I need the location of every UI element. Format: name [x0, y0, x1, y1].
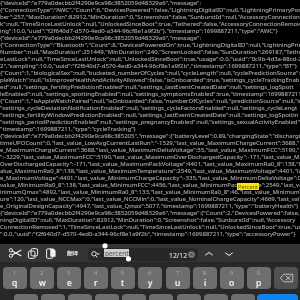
button[interactable]: Copy: [24, 244, 41, 262]
staticText: ure":120,"last_value_NCCMax":0,"last_val…: [0, 195, 300, 202]
button[interactable]: Next match: [220, 244, 238, 264]
button[interactable]: Enter: [257, 294, 298, 300]
button[interactable]: Paste: [42, 244, 59, 262]
staticText: {"deviceId":"e779a0decbb2f4290e9ca98c385…: [0, 209, 300, 216]
staticText: Percent: [238, 183, 259, 190]
staticText: 9: [230, 269, 234, 276]
staticText: alue_MaximumRa0_8":138,"last_value_Maxim…: [0, 167, 300, 174]
staticText: o: [229, 277, 235, 289]
staticText: ConnectionRemoved":1,"TimeSinceLastLock"…: [0, 223, 300, 230]
staticText: 2","sampling":10.0,"uuid":"f2f640d7-d570…: [0, 62, 300, 69]
staticText: r: [94, 277, 98, 289]
staticText: 3: [67, 269, 71, 276]
staticText: i: [204, 277, 207, 289]
staticText: timeUPOCount":0,"last_value_LowAvgCurren…: [0, 139, 300, 146]
staticText: 12/12: [169, 251, 188, 260]
button[interactable]: 5: [111, 267, 135, 289]
staticText: ":0.0,"uuid":"f2f640d7-d570-4ed0-a344-96…: [0, 230, 300, 237]
staticText: k":null,"TimeSinceLastUnlock":null,"Unlo…: [0, 20, 300, 27]
staticText: "settings_cycleDeviationNotificationEnab…: [0, 104, 300, 111]
staticText: {"deviceId":"e779a0decbb2f4290e9ca98c385…: [0, 34, 300, 41]
button[interactable]: a: [14, 294, 38, 300]
staticText: 6: [148, 269, 152, 276]
staticText: q: [12, 277, 18, 289]
staticText: w: [39, 277, 46, 289]
button[interactable]: 9: [220, 267, 244, 289]
staticText: "timestamp":1699887211,"type":"cycleTrac…: [0, 125, 300, 132]
button[interactable]: 6: [138, 267, 162, 289]
button[interactable]: d: [68, 294, 92, 300]
staticText: {"deviceId":"e779a0decbb2f4290e9ca98c385…: [0, 0, 300, 6]
staticText: ber":257,"MaxDuration":82912,"MinDuratio…: [0, 13, 300, 20]
staticText: 0: [257, 269, 261, 276]
staticText: u: [175, 277, 181, 289]
staticText: percent: [105, 249, 129, 257]
button[interactable]: Previous match: [200, 244, 218, 264]
staticText: Number":null,"MaxDuration":251449,"MinDu…: [0, 48, 300, 55]
button[interactable]: percent: [88, 248, 198, 261]
staticText: y: [148, 277, 153, 289]
button[interactable]: 4: [84, 267, 108, 289]
button[interactable]: 2: [30, 267, 54, 289]
staticText: 8: [203, 269, 207, 276]
button[interactable]: k: [204, 294, 228, 300]
staticText: ningDigitalID":null,"MaxDuration":82912,…: [0, 216, 300, 223]
staticText: pleWatch":null,"isImproveHealthAndActivi…: [0, 76, 300, 83]
staticText: ing":10.0,"uuid":"f2f640d7-d570-4ed0-a34…: [0, 27, 300, 34]
staticText: "settings_fertilityWindowPredictionEnabl…: [0, 111, 300, 118]
staticText: 7: [176, 269, 180, 276]
staticText: ":-3229,"last_value_MaximumFCC":5190,"la…: [0, 153, 300, 160]
staticText: {"Count":1,"biologicalSex":null,"buckete…: [0, 69, 300, 76]
button[interactable]: s: [41, 294, 65, 300]
button[interactable]: h: [149, 294, 173, 300]
button[interactable]: 7: [166, 267, 190, 289]
staticText: 翻译: [67, 250, 78, 257]
staticText: e_OriginalDesignCapacity":4947,"last_val…: [0, 202, 300, 209]
staticText: inimumQmax":4892,"last_value_MinimumRa0_…: [0, 188, 300, 195]
staticText: 4: [94, 269, 98, 276]
staticText: OverDischargedCapacity":-171,"last_value…: [0, 160, 300, 167]
button[interactable]: 3: [57, 267, 81, 289]
staticText: eLastLock":null,"TimeSinceLastUnlock":nu…: [0, 55, 300, 62]
staticText: {"ConnectionType":"AWC","Count":6,"Devic…: [0, 6, 300, 13]
button[interactable]: Backspace: [274, 267, 298, 289]
button[interactable]: l: [231, 294, 255, 300]
staticText: ed":null,"settings_fertilityPredictionEn…: [0, 83, 300, 90]
staticText: e_MaximumVoltage":4401,"last_value_Minim…: [0, 174, 300, 181]
staticText: {"deviceId":"e779a0decbb2f4290e9ca98c385…: [0, 132, 300, 139]
staticText: leEnabled":null,"settings_spottingEnable…: [0, 90, 300, 97]
button[interactable]: g: [122, 294, 146, 300]
button[interactable]: 8: [193, 267, 217, 289]
staticText: p: [256, 277, 262, 289]
staticText: t: [121, 277, 125, 289]
staticText: value_MinimumRa0_8":138,"last_value_Mini…: [0, 181, 300, 188]
button[interactable]: Cut: [6, 244, 23, 262]
staticText: 2: [40, 269, 44, 276]
button[interactable]: 0: [247, 267, 271, 289]
button[interactable]: f: [95, 294, 119, 300]
button[interactable]: 1: [3, 267, 27, 289]
staticText: {"ConnectionType":"Bluetooth","Count":8,…: [0, 41, 300, 48]
staticText: {"Count":1,"isAppleWatchPaired":null,"is…: [0, 97, 300, 104]
staticText: e: [67, 277, 72, 289]
staticText: e_MaximumChargeCurrent":3688,"last_value…: [0, 146, 300, 153]
staticText: 1: [13, 269, 17, 276]
button[interactable]: j: [177, 294, 201, 300]
staticText: 5: [121, 269, 125, 276]
staticText: "settings_periodPredictionEnabled":null,…: [0, 118, 300, 125]
button[interactable]: Translate: [63, 244, 82, 262]
